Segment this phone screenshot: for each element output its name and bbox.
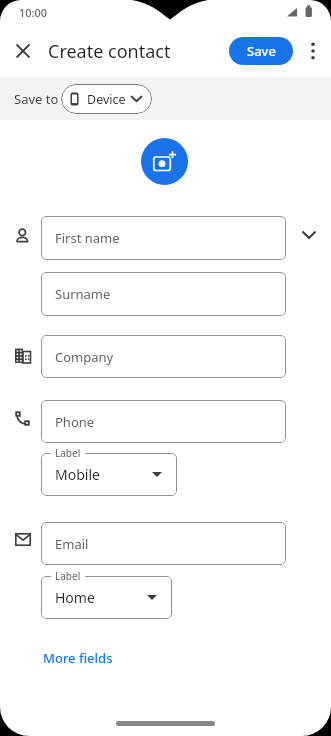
staticText: Email <box>55 535 89 553</box>
staticText: More fields <box>43 649 113 667</box>
button[interactable]: Mobile <box>41 453 177 496</box>
staticText: Mobile <box>55 465 100 484</box>
staticText: Create contact <box>48 39 171 63</box>
staticText: 10:00 <box>19 5 48 20</box>
button[interactable]: Email <box>41 522 286 565</box>
staticText: Save to <box>14 90 59 108</box>
staticText: First name <box>55 229 120 247</box>
staticText: Phone <box>55 413 95 431</box>
staticText: Label <box>55 446 81 460</box>
staticText: Home <box>55 588 95 607</box>
button[interactable]: Company <box>41 335 286 378</box>
button[interactable]: More fields <box>43 646 123 670</box>
staticText: Device <box>87 91 126 108</box>
staticText: Label <box>55 569 81 583</box>
button[interactable] <box>10 38 36 64</box>
staticText: Save <box>247 42 276 60</box>
staticText: Surname <box>55 285 111 303</box>
button[interactable] <box>141 138 188 185</box>
button[interactable]: Device <box>61 84 152 114</box>
button[interactable]: Home <box>41 576 172 619</box>
button[interactable] <box>296 222 322 248</box>
button[interactable]: First name <box>41 216 286 260</box>
button[interactable] <box>303 41 323 61</box>
button[interactable]: Phone <box>41 400 286 443</box>
button[interactable]: Surname <box>41 272 286 316</box>
staticText: Company <box>55 348 114 366</box>
button[interactable]: Save <box>229 37 293 65</box>
